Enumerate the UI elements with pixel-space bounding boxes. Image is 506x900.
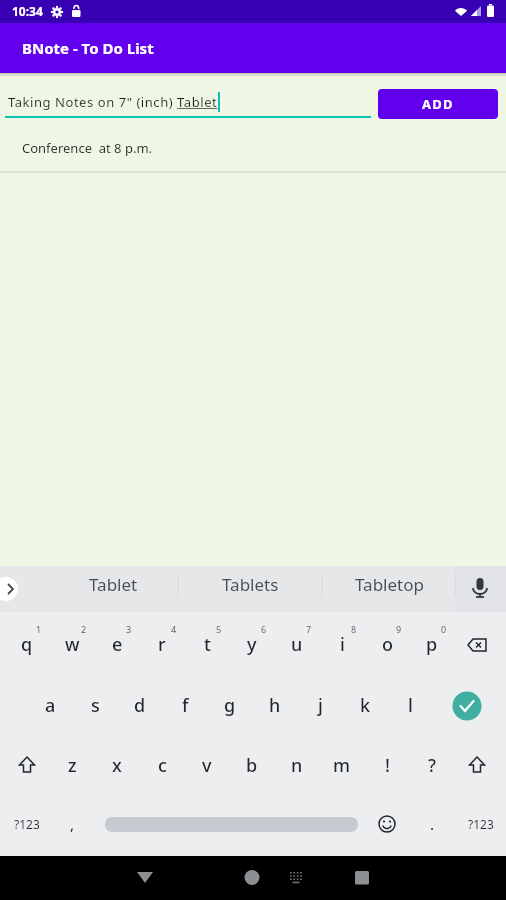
button[interactable]: q [7,622,47,666]
staticText: i [340,632,345,657]
staticText: c [158,753,167,778]
button[interactable]: m [322,743,362,787]
button[interactable]: i [322,622,362,666]
staticText: v [202,753,212,778]
button[interactable]: Tablet [53,566,173,612]
button[interactable]: b [232,743,272,787]
button[interactable]: u [277,622,317,666]
staticText: 7 [306,623,312,635]
staticText: 0 [441,623,447,635]
staticText: p [426,632,438,657]
staticText: ! [385,753,390,778]
button[interactable]: f [165,683,205,727]
staticText: q [21,632,33,657]
button[interactable]: ? [412,743,452,787]
staticText: 3 [126,623,132,635]
button[interactable]: ?123 [2,809,52,839]
button[interactable]: n [277,743,317,787]
staticText: ? [428,753,437,778]
staticText: Tablets [222,573,279,596]
staticText: w [65,632,80,657]
staticText: o [382,632,393,657]
button[interactable]: k [345,683,385,727]
button[interactable]: x [97,743,137,787]
button[interactable]: 7 [284,614,334,644]
button[interactable]: p [412,622,452,666]
staticText: g [224,693,236,718]
staticText: ADD [422,95,454,113]
button[interactable]: Tabletop [329,566,449,612]
staticText: x [112,753,122,778]
button[interactable]: r [142,622,182,666]
staticText: y [247,632,257,657]
button[interactable]: a [30,683,70,727]
button[interactable]: Tablets [190,566,310,612]
button[interactable]: 0 [419,614,469,644]
staticText: . [430,814,435,834]
button[interactable]: , [52,802,92,846]
staticText: BNote - To Do List [22,38,154,58]
button[interactable]: v [187,743,227,787]
staticText: b [246,753,258,778]
button[interactable]: y [232,622,272,666]
button[interactable]: 2 [59,614,109,644]
button[interactable]: z [52,743,92,787]
button[interactable]: ! [367,743,407,787]
button[interactable]: ADD [378,89,498,119]
staticText: l [408,693,413,718]
button[interactable]: w [52,622,92,666]
staticText: ?123 [14,816,40,832]
staticText: 10:34 [12,3,43,19]
staticText: d [134,693,146,718]
button[interactable] [125,858,165,898]
button[interactable]: l [390,683,430,727]
button[interactable]: 8 [329,614,379,644]
staticText: j [318,693,323,718]
staticText: 2 [81,623,87,635]
staticText: z [68,753,77,778]
button[interactable] [232,858,272,898]
button[interactable]: 4 [149,614,199,644]
staticText: 4 [171,623,177,635]
staticText: n [291,753,303,778]
staticText: , [70,814,75,834]
staticText: k [360,693,371,718]
button[interactable]: . [412,802,452,846]
staticText: a [45,693,56,718]
button[interactable]: 9 [374,614,424,644]
staticText: e [112,632,123,657]
staticText: Taking Notes on 7" (inch) Tablet [8,93,218,111]
staticText: m [333,753,351,778]
button[interactable]: c [142,743,182,787]
button[interactable]: 1 [14,614,64,644]
button[interactable]: ?123 [456,809,506,839]
button[interactable]: 5 [194,614,244,644]
staticText: h [269,693,281,718]
staticText: f [182,693,189,718]
staticText: 5 [216,623,222,635]
button[interactable]: 6 [239,614,289,644]
button[interactable]: s [75,683,115,727]
button[interactable]: j [300,683,340,727]
staticText: 6 [261,623,267,635]
staticText: Tablet [89,573,138,596]
staticText: s [91,693,100,718]
button[interactable] [455,566,506,612]
button[interactable]: o [367,622,407,666]
button[interactable]: 3 [104,614,154,644]
button[interactable]: h [255,683,295,727]
button[interactable]: d [120,683,160,727]
staticText: r [158,632,166,657]
button[interactable] [0,577,18,601]
button[interactable]: g [210,683,250,727]
button[interactable]: t [187,622,227,666]
staticText: Tabletop [355,573,424,596]
staticText: t [204,632,211,657]
staticText: 1 [36,623,42,635]
button[interactable]: Conference at 8 p.m. [22,139,153,157]
button[interactable]: e [97,622,137,666]
button[interactable] [339,858,379,898]
button[interactable] [105,817,358,832]
staticText: u [291,632,303,657]
staticText: ?123 [468,816,494,832]
